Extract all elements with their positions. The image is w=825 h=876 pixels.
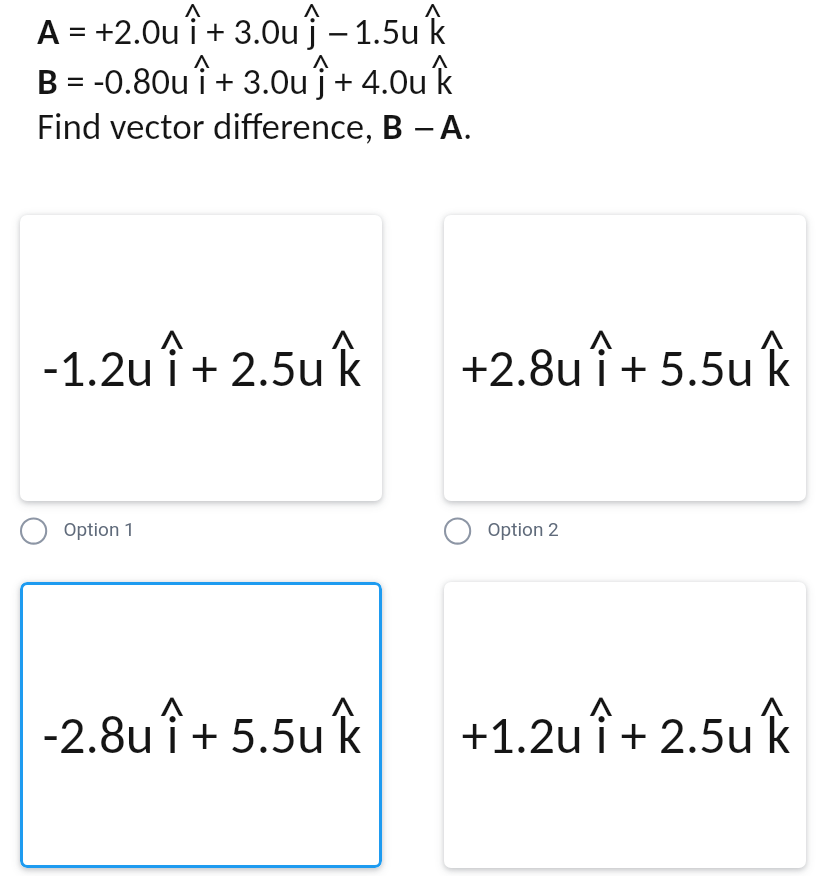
- button[interactable]: Answer choice +2.8u i + 5.5u k: [444, 215, 806, 501]
- button[interactable]: Answer choice -2.8u i + 5.5u k, selected: [20, 582, 382, 868]
- button[interactable]: Answer choice -1.2u i + 2.5u k: [20, 215, 382, 501]
- button[interactable]: Option 1: [20, 514, 220, 548]
- button[interactable]: Option 2: [444, 514, 644, 548]
- button[interactable]: Answer choice +1.2u i + 2.5u k: [444, 582, 806, 868]
